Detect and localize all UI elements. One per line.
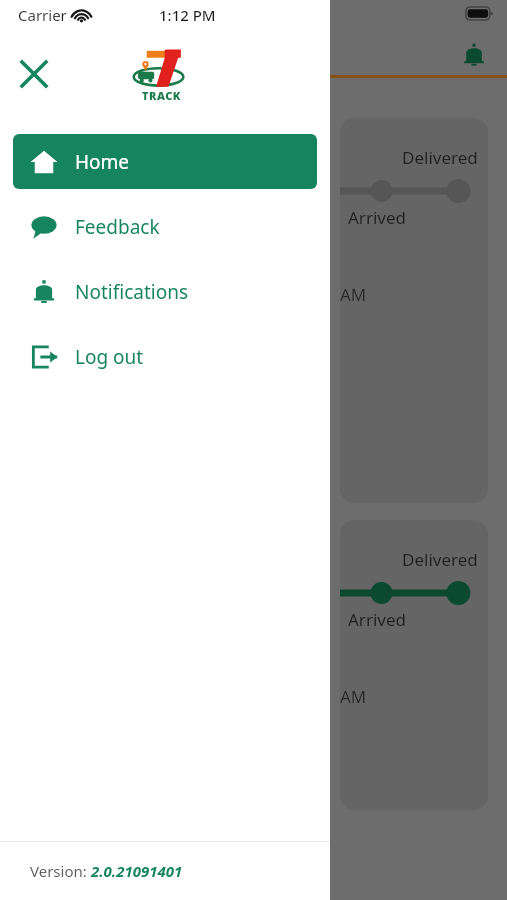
staticText: 2.0.21091401 — [91, 861, 183, 881]
button[interactable]: Delivered — [340, 118, 488, 503]
staticText: AM — [340, 283, 367, 306]
staticText: AM — [340, 685, 367, 708]
staticText: Log out — [75, 344, 144, 370]
staticText: TRACK — [142, 88, 181, 103]
button[interactable]: Delivered — [340, 520, 488, 810]
button[interactable]: Feedback — [13, 199, 317, 254]
staticText: Arrived — [348, 608, 406, 631]
staticText: Arrived — [348, 206, 406, 229]
button[interactable]: Home — [13, 134, 317, 189]
staticText: Home — [75, 149, 130, 175]
button[interactable]: Close — [12, 52, 56, 96]
staticText: 1:12 PM — [159, 5, 216, 25]
button[interactable]: Notifications — [13, 264, 317, 319]
staticText: Version: — [30, 861, 91, 881]
button[interactable]: Log out — [13, 329, 317, 384]
staticText: Delivered — [402, 146, 478, 169]
staticText: Carrier — [18, 5, 67, 25]
button[interactable]: Notifications — [455, 36, 493, 74]
staticText: Delivered — [402, 548, 478, 571]
staticText: Notifications — [75, 279, 189, 305]
staticText: Feedback — [75, 214, 160, 240]
